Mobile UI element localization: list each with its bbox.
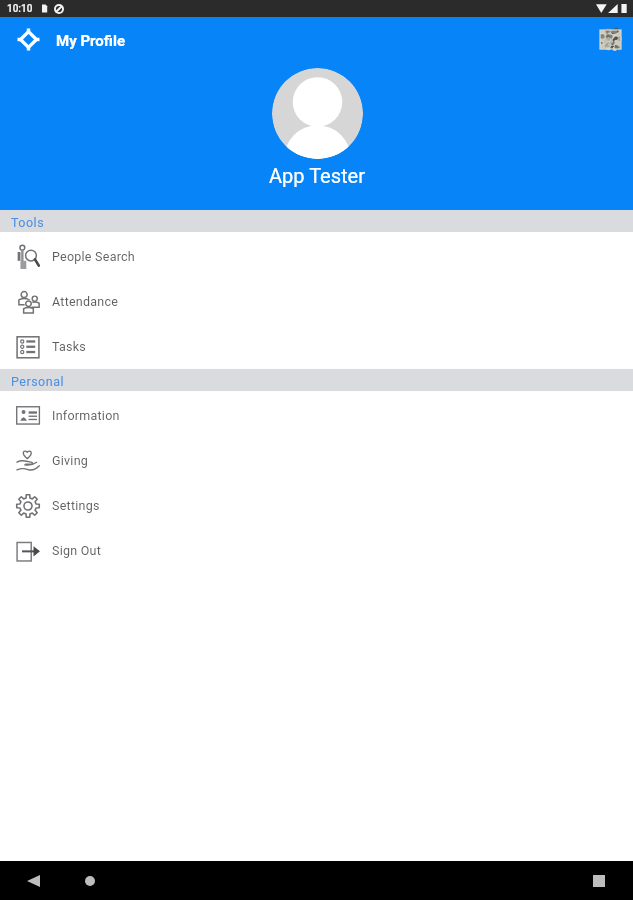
- staticText: Information: [52, 408, 120, 423]
- staticText: Giving: [52, 453, 89, 468]
- button[interactable]: Attendance: [0, 279, 633, 324]
- button[interactable]: Tasks: [0, 324, 633, 369]
- button[interactable]: Profile photo: [600, 30, 621, 49]
- button[interactable]: Settings: [0, 483, 633, 528]
- staticText: My Profile: [56, 32, 126, 50]
- button[interactable]: Home: [85, 876, 95, 886]
- button[interactable]: Back: [27, 875, 40, 887]
- staticText: Tools: [11, 215, 45, 230]
- staticText: Sign Out: [52, 543, 102, 558]
- button[interactable]: Sign Out: [0, 528, 633, 573]
- button[interactable]: Change profile picture: [272, 68, 363, 159]
- staticText: People Search: [52, 249, 135, 264]
- staticText: Personal: [11, 374, 64, 389]
- staticText: Attendance: [52, 294, 119, 309]
- staticText: Settings: [52, 498, 100, 513]
- button[interactable]: People Search: [0, 234, 633, 279]
- button[interactable]: Giving: [0, 438, 633, 483]
- button[interactable]: Menu: [17, 28, 40, 51]
- button[interactable]: Information: [0, 393, 633, 438]
- staticText: App Tester: [269, 164, 365, 187]
- staticText: 10:10: [7, 3, 33, 15]
- staticText: Tasks: [52, 339, 87, 354]
